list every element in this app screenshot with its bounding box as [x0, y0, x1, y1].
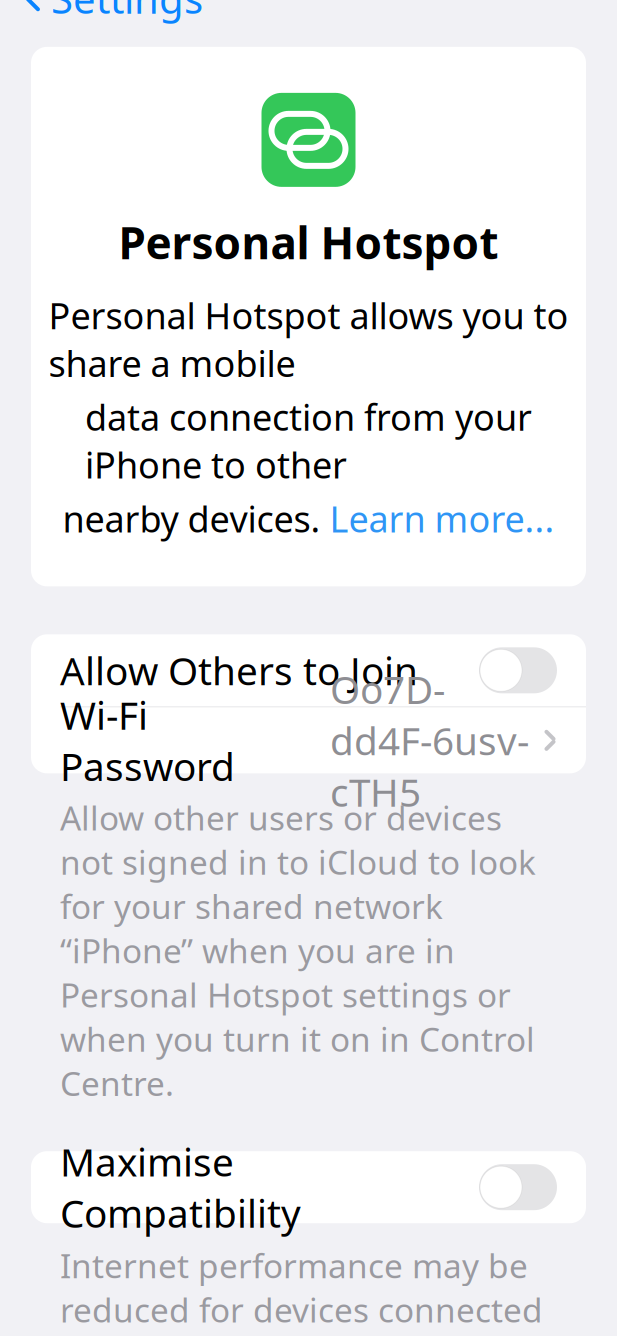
staticText: Wi-Fi Password: [60, 689, 235, 792]
staticText: Personal Hotspot: [118, 213, 498, 271]
staticText: data connection from your iPhone to othe…: [85, 393, 532, 488]
staticText: Internet performance may be reduced for …: [60, 1243, 543, 1336]
staticText: Maximise Compatibility: [60, 1136, 301, 1238]
staticText: Oo7D-dd4F-6usv-cTH5: [330, 663, 529, 817]
button[interactable]: Allow Others to Join: [31, 634, 586, 706]
button[interactable]: Settings: [4, 0, 223, 35]
staticText: nearby devices.: [62, 494, 329, 542]
staticText: Settings: [51, 0, 203, 25]
button[interactable]: Maximise Compatibility: [31, 1151, 586, 1223]
staticText: Allow Others to Join: [60, 645, 418, 696]
staticText: Personal Hotspot allows you to share a m…: [48, 291, 568, 387]
button[interactable]: Wi-Fi Password: [31, 707, 586, 773]
staticText: Learn more...: [329, 494, 554, 542]
staticText: Allow other users or devices not signed …: [60, 795, 536, 1105]
button[interactable]: Learn more...: [329, 494, 554, 542]
